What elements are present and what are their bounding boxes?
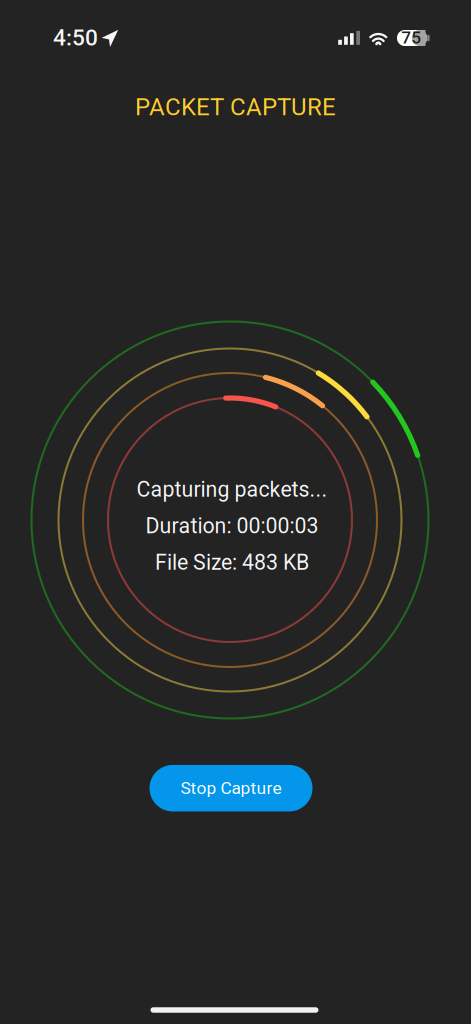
staticText: Capturing packets... bbox=[136, 477, 327, 502]
staticText: 4:50 bbox=[53, 24, 98, 51]
staticText: Stop Capture bbox=[180, 778, 281, 798]
staticText: Duration: 00:00:03 bbox=[145, 513, 318, 538]
staticText: File Size: 483 KB bbox=[155, 550, 309, 575]
button[interactable]: Stop Capture bbox=[149, 765, 312, 811]
staticText: PACKET CAPTURE bbox=[135, 93, 336, 121]
staticText: 75 bbox=[401, 27, 421, 48]
